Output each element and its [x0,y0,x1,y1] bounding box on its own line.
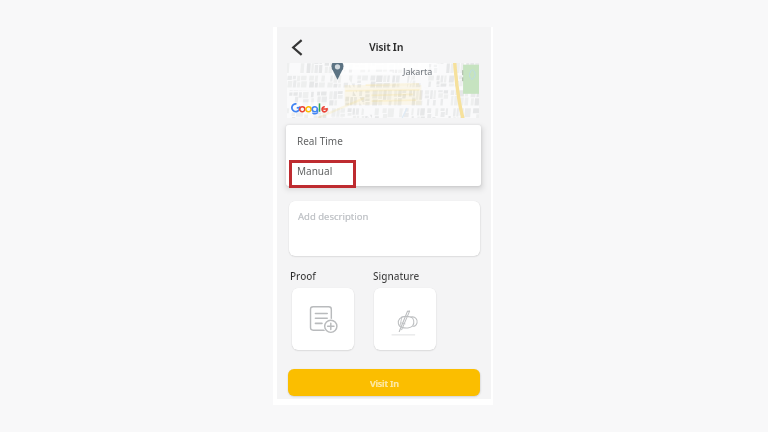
button[interactable]: Add signature [374,288,436,350]
button[interactable]: Add description [289,201,480,256]
staticText: Jakarta [403,65,433,77]
staticText: Signature [373,269,420,283]
button[interactable]: Real Time [286,125,481,156]
button[interactable]: Add proof document [292,288,354,350]
button[interactable]: Back [285,34,309,60]
staticText: Real Time [297,134,343,148]
staticText: Visit In [369,40,404,54]
staticText: Proof [290,269,316,283]
button[interactable]: Visit In [288,369,480,396]
staticText: Add description [298,210,369,223]
button[interactable]: Manual [286,156,481,186]
staticText: Visit In [370,377,399,389]
staticText: Manual [297,164,333,178]
